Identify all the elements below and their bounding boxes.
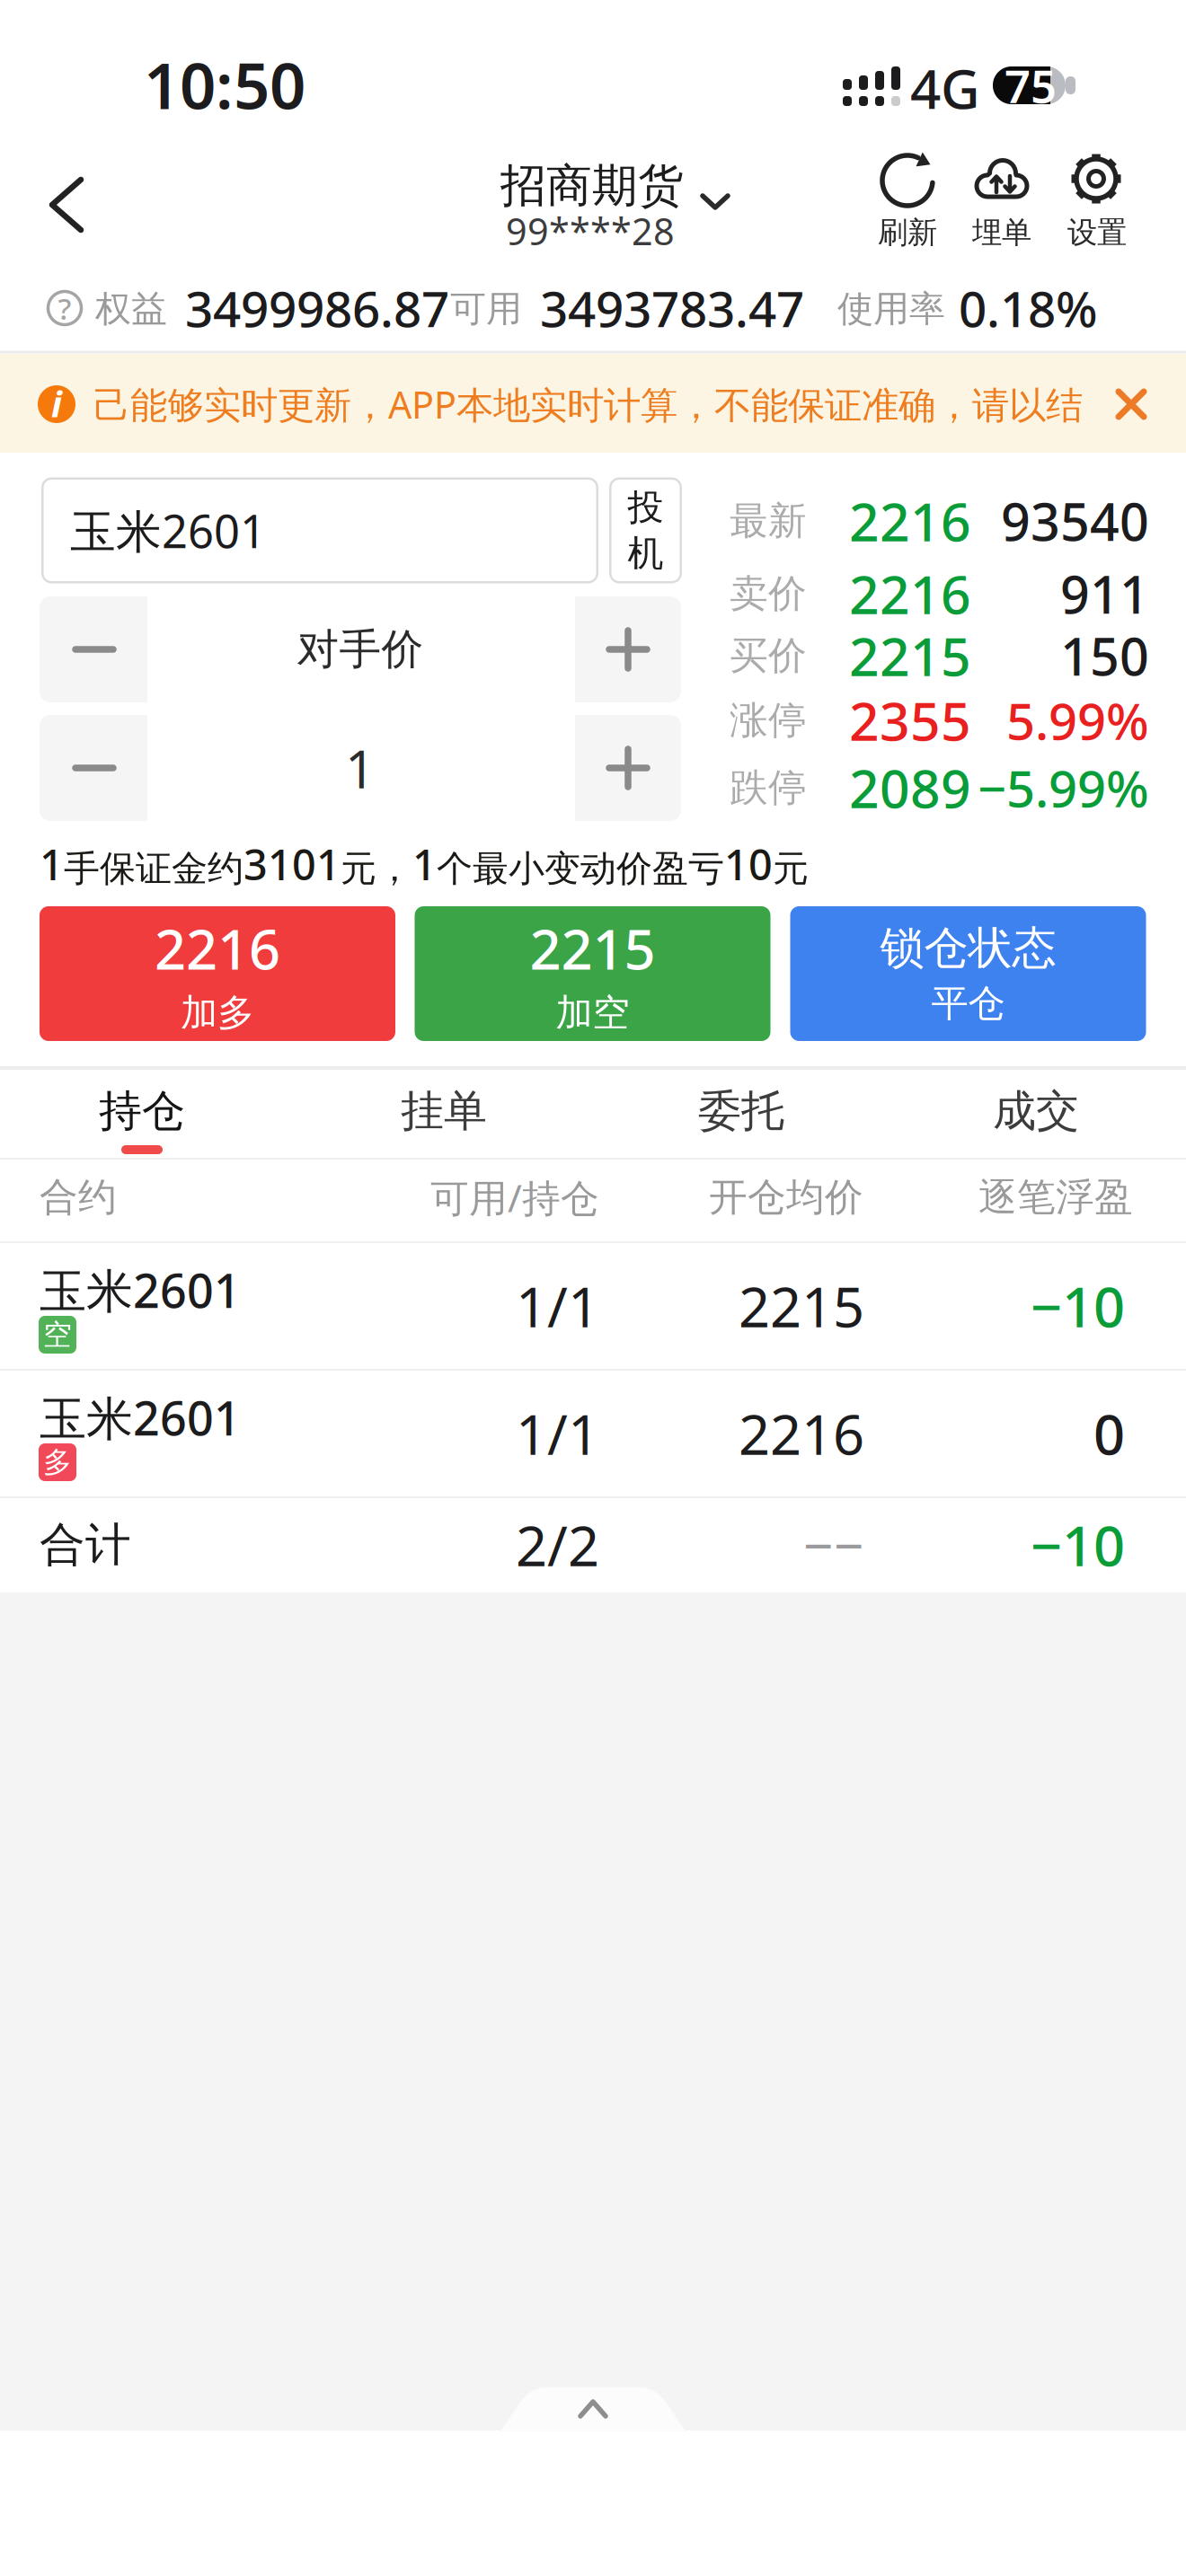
staticText: 多 — [43, 1445, 72, 1480]
staticText: 使用率 — [837, 287, 945, 331]
staticText: 买价 — [730, 632, 807, 679]
button[interactable]: 增加 — [575, 596, 681, 702]
staticText: 对手价 — [297, 624, 424, 675]
staticText: 己能够实时更新，APP本地实时计算，不能保证准确，请以结 — [93, 380, 1083, 429]
staticText: 2355 — [849, 685, 971, 755]
button[interactable]: 委托 — [633, 1068, 849, 1154]
staticText: 跌停 — [730, 764, 807, 811]
staticText: 招商期货 — [500, 158, 684, 214]
button[interactable]: 埋单 — [946, 135, 1058, 257]
staticText: 75 — [1005, 55, 1057, 116]
staticText: 2215 — [530, 912, 655, 985]
staticText: 加多 — [181, 990, 254, 1036]
staticText: 99****28 — [506, 206, 675, 256]
button[interactable]: 玉米2601 — [0, 1370, 1186, 1497]
button[interactable]: 玉米2601 — [41, 477, 598, 583]
button[interactable]: 2216 — [40, 906, 395, 1041]
staticText: 5.99% — [1006, 687, 1149, 754]
staticText: 93540 — [1001, 487, 1149, 555]
staticText: 委托 — [698, 1085, 784, 1138]
staticText: 3499986.87 — [185, 275, 449, 341]
button[interactable]: 设置 — [1041, 135, 1153, 257]
staticText: 0.18% — [959, 275, 1098, 341]
staticText: −10 — [1031, 1269, 1125, 1343]
staticText: −10 — [1031, 1508, 1125, 1581]
staticText: 2216 — [155, 912, 280, 985]
staticText: 玉米2601 — [40, 1259, 241, 1321]
staticText: 可用/持仓 — [430, 1172, 599, 1223]
staticText: 持仓 — [99, 1085, 185, 1138]
button[interactable]: 减少 — [40, 596, 147, 702]
staticText: ? — [58, 288, 71, 328]
staticText: 0 — [1093, 1397, 1125, 1470]
staticText: 玉米2601 — [40, 1386, 241, 1448]
staticText: 挂单 — [401, 1085, 487, 1138]
staticText: 设置 — [1067, 214, 1127, 251]
staticText: 逐笔浮盈 — [978, 1174, 1133, 1221]
staticText: 10:50 — [144, 42, 305, 127]
button[interactable]: 减少 — [40, 715, 147, 821]
staticText: 1/1 — [516, 1397, 599, 1470]
staticText: −5.99% — [978, 754, 1149, 821]
button[interactable]: 投 — [609, 477, 682, 583]
staticText: 3493783.47 — [540, 275, 804, 341]
staticText: 投 — [628, 485, 664, 529]
staticText: 空 — [43, 1317, 72, 1352]
staticText: −− — [803, 1510, 864, 1580]
staticText: 机 — [628, 531, 664, 575]
button[interactable]: 挂单 — [336, 1068, 552, 1154]
staticText: 可用 — [450, 287, 522, 331]
staticText: 2215 — [739, 1269, 864, 1343]
staticText: 涨停 — [730, 697, 807, 744]
staticText: 合计 — [40, 1517, 131, 1573]
button[interactable]: 玉米2601 — [0, 1242, 1186, 1370]
staticText: 1手保证金约3101元，1个最小变动价盈亏10元 — [40, 836, 809, 892]
button[interactable]: 返回 — [17, 155, 116, 254]
staticText: 最新 — [730, 497, 807, 544]
staticText: 2216 — [849, 559, 971, 629]
staticText: 埋单 — [972, 214, 1031, 251]
button[interactable]: 持仓 — [34, 1068, 250, 1154]
staticText: 刷新 — [878, 214, 937, 251]
button[interactable]: 成交 — [928, 1068, 1144, 1154]
button[interactable]: 增加 — [575, 715, 681, 821]
staticText: 玉米2601 — [70, 500, 266, 561]
staticText: 1/1 — [516, 1269, 599, 1343]
button[interactable]: 帮助 — [38, 281, 92, 335]
staticText: 911 — [1060, 559, 1149, 628]
staticText: 合约 — [40, 1174, 117, 1221]
staticText: 权益 — [95, 287, 167, 331]
button[interactable]: 刷新 — [852, 135, 963, 257]
button[interactable]: 关闭 — [1091, 364, 1172, 445]
staticText: 平仓 — [931, 981, 1005, 1026]
button[interactable]: 展开 — [485, 2386, 701, 2432]
button[interactable]: 锁仓状态 — [790, 906, 1146, 1041]
staticText: 锁仓状态 — [880, 921, 1056, 975]
staticText: 2089 — [849, 753, 971, 823]
staticText: 成交 — [993, 1085, 1079, 1138]
staticText: 开仓均价 — [709, 1174, 863, 1221]
staticText: 1 — [345, 733, 376, 803]
staticText: 2216 — [739, 1397, 864, 1470]
button[interactable]: 招商期货 — [386, 144, 800, 260]
staticText: 2215 — [849, 621, 971, 691]
staticText: 加空 — [556, 990, 629, 1036]
staticText: 150 — [1060, 621, 1149, 690]
button[interactable]: 2215 — [415, 906, 770, 1041]
staticText: 2/2 — [516, 1508, 599, 1581]
staticText: 2216 — [849, 486, 971, 556]
staticText: 卖价 — [730, 570, 807, 617]
staticText: i — [51, 379, 62, 427]
staticText: 4G — [910, 52, 980, 124]
